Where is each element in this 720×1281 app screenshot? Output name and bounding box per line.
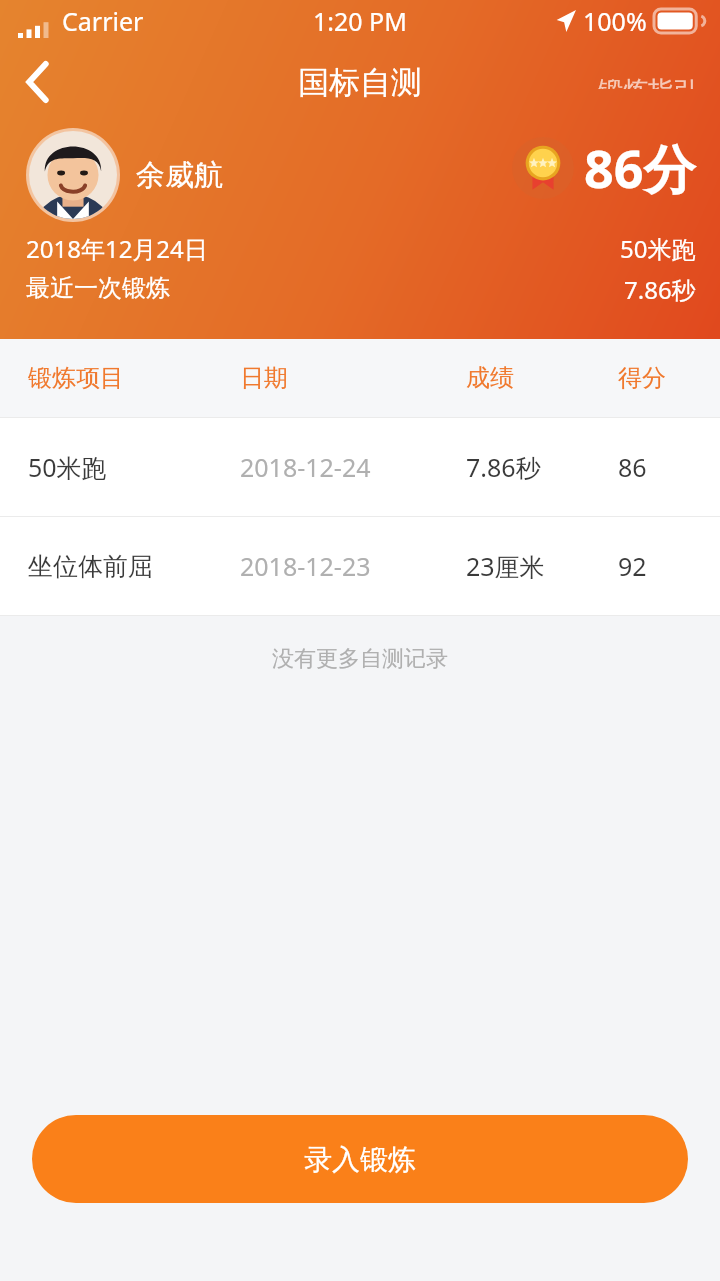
staticText: 86分 <box>584 132 696 203</box>
staticText: 锻炼指引 <box>598 75 698 89</box>
staticText: 成绩 <box>466 363 514 393</box>
button[interactable]: Back <box>0 61 76 103</box>
staticText: 7.86秒 <box>466 450 541 484</box>
staticText: 录入锻炼 <box>304 1142 416 1177</box>
staticText: 锻炼项目 <box>28 363 124 393</box>
staticText: 最近一次锻炼 <box>26 273 170 303</box>
button[interactable]: 50米跑 <box>0 418 720 516</box>
staticText: 92 <box>618 549 647 583</box>
staticText: Carrier <box>62 4 144 38</box>
staticText: 没有更多自测记录 <box>272 645 448 673</box>
staticText: 日期 <box>240 363 288 393</box>
staticText: 7.86秒 <box>624 273 696 306</box>
staticText: 得分 <box>618 363 666 393</box>
staticText: 国标自测 <box>298 63 422 102</box>
button[interactable]: 录入锻炼 <box>32 1115 688 1203</box>
staticText: 50米跑 <box>28 450 107 484</box>
button[interactable]: 锻炼指引 <box>576 61 720 103</box>
staticText: 2018-12-23 <box>240 549 371 583</box>
staticText: 1:20 PM <box>313 4 407 38</box>
staticText: 2018年12月24日 <box>26 232 208 265</box>
button[interactable]: 坐位体前屈 <box>0 517 720 615</box>
staticText: 2018-12-24 <box>240 450 371 484</box>
staticText: 坐位体前屈 <box>28 551 153 582</box>
staticText: 50米跑 <box>620 232 696 265</box>
staticText: 86 <box>618 450 647 484</box>
staticText: 23厘米 <box>466 549 545 583</box>
staticText: 100% <box>583 4 647 38</box>
staticText: 余威航 <box>136 157 223 194</box>
